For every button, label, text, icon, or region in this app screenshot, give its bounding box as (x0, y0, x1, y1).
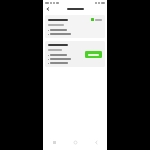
button[interactable] (45, 15, 105, 38)
button[interactable]: Back (86, 137, 107, 148)
button[interactable] (85, 51, 102, 58)
button[interactable]: Back (45, 6, 51, 12)
button[interactable]: Recents (43, 137, 65, 148)
button[interactable] (45, 41, 105, 67)
button[interactable]: Home (65, 137, 86, 148)
